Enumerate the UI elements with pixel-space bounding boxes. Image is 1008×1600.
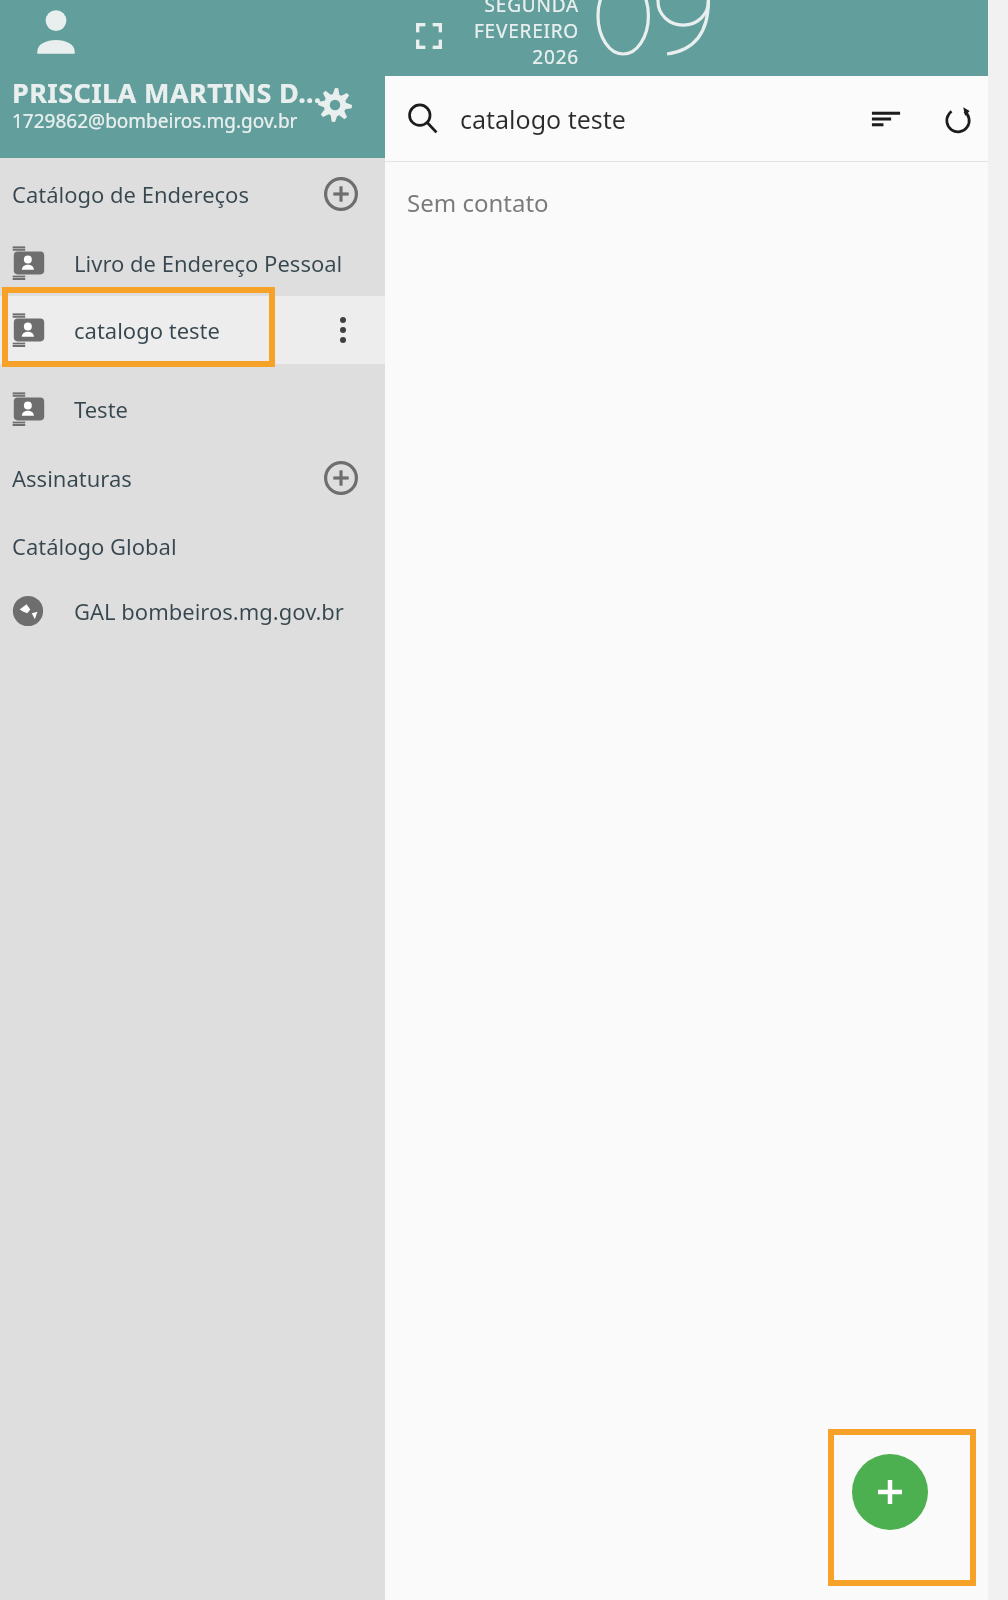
staticText: SEGUNDA [484, 0, 579, 18]
staticText: Sem contato [407, 186, 549, 219]
button[interactable]: PRISCILA MARTINS D… [0, 0, 385, 158]
staticText: Livro de Endereço Pessoal [74, 248, 343, 278]
button[interactable]: Tela cheia [407, 14, 451, 58]
staticText: Catálogo de Endereços [12, 179, 249, 209]
staticText: Assinaturas [12, 463, 132, 493]
button[interactable]: Teste [0, 376, 385, 442]
button[interactable]: Mais opções [315, 302, 371, 358]
staticText: Teste [74, 394, 128, 424]
button[interactable]: Atualizar [930, 91, 986, 147]
button[interactable]: Pesquisar [395, 91, 451, 147]
button[interactable]: Adicionar assinatura [317, 454, 365, 502]
staticText: 2026 [469, 44, 579, 68]
button[interactable]: Livro de Endereço Pessoal [0, 230, 385, 296]
button[interactable]: Ordenar [858, 91, 914, 147]
staticText: 1729862@bombeiros.mg.gov.br [12, 108, 298, 134]
button[interactable]: Adicionar catálogo de endereços [317, 170, 365, 218]
button[interactable]: Adicionar contato [852, 1454, 928, 1530]
staticText: catalogo teste [460, 102, 626, 136]
button[interactable]: Configurações [305, 75, 365, 135]
button[interactable]: GAL bombeiros.mg.gov.br [0, 578, 385, 644]
button[interactable]: catalogo teste [0, 296, 385, 364]
button[interactable]: Catálogo Global [0, 514, 385, 578]
staticText: catalogo teste [74, 315, 220, 345]
staticText: GAL bombeiros.mg.gov.br [74, 596, 344, 626]
staticText: FEVEREIRO [473, 18, 579, 44]
staticText: Catálogo Global [12, 531, 177, 561]
staticText: PRISCILA MARTINS D… [12, 74, 322, 111]
